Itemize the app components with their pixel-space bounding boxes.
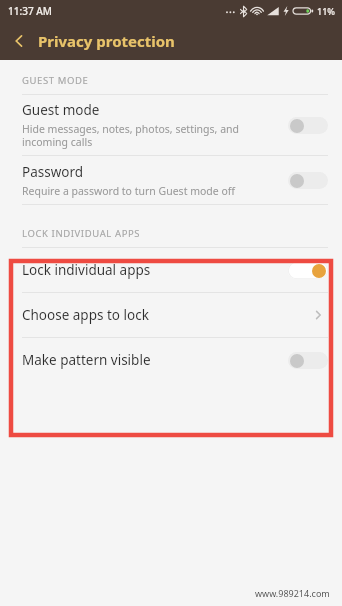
button[interactable]: Lock individual apps <box>0 248 342 292</box>
staticText: Hide messages, notes, photos, settings, … <box>22 122 239 149</box>
staticText: 11% <box>317 5 335 17</box>
button[interactable]: Choose apps to lock <box>0 293 342 337</box>
button[interactable]: Back <box>0 22 38 60</box>
staticText: Require a password to turn Guest mode of… <box>22 184 236 198</box>
button[interactable]: Make pattern visible <box>0 338 342 382</box>
button[interactable]: Password <box>0 156 342 204</box>
staticText: Password <box>22 163 84 181</box>
staticText: www.989214.com <box>255 587 330 599</box>
button[interactable]: Toggle off <box>288 117 328 134</box>
staticText: Choose apps to lock <box>22 306 149 324</box>
staticText: Privacy protection <box>38 31 175 51</box>
staticText: GUEST MODE <box>22 74 89 87</box>
button[interactable]: Toggle on <box>288 262 328 279</box>
staticText: 11:37 AM <box>8 4 52 18</box>
button[interactable]: Toggle off <box>288 352 328 369</box>
button[interactable]: Guest mode <box>0 95 342 155</box>
staticText: Lock individual apps <box>22 261 151 279</box>
staticText: Make pattern visible <box>22 351 151 369</box>
button[interactable]: Toggle off <box>288 172 328 189</box>
staticText: Guest mode <box>22 101 100 119</box>
staticText: LOCK INDIVIDUAL APPS <box>22 227 141 240</box>
button[interactable]: Open <box>308 305 328 325</box>
